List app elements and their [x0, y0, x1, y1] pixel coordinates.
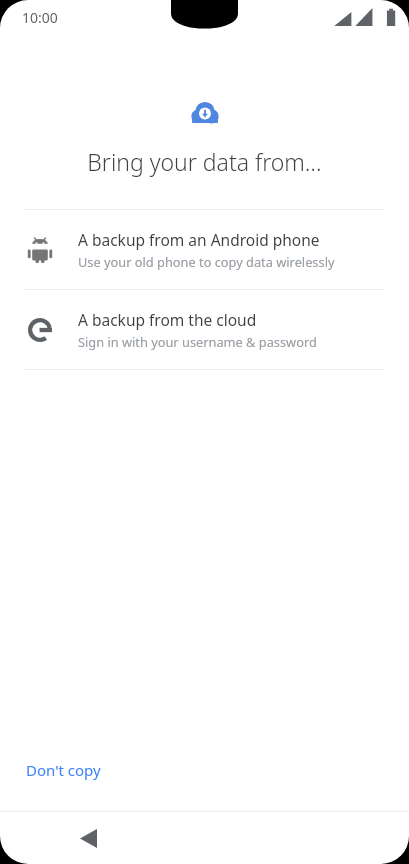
staticText: Bring your data from… — [24, 146, 385, 177]
button[interactable]: Don't copy — [14, 750, 113, 790]
staticText: A backup from the cloud — [78, 309, 257, 330]
staticText: A backup from an Android phone — [78, 229, 320, 250]
staticText: Don't copy — [26, 760, 101, 780]
button[interactable]: Back — [66, 816, 110, 860]
staticText: 10:00 — [22, 8, 58, 27]
button[interactable]: A backup from the cloud — [0, 290, 409, 369]
staticText: Sign in with your username & password — [78, 333, 317, 350]
button[interactable]: A backup from an Android phone — [0, 210, 409, 289]
staticText: Use your old phone to copy data wireless… — [78, 253, 335, 270]
